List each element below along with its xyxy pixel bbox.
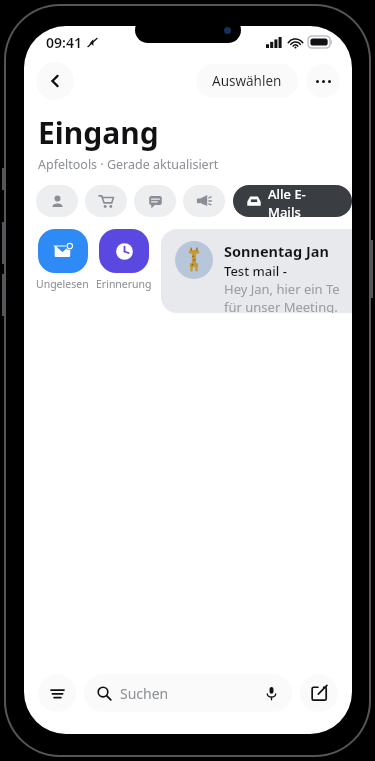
button[interactable]: Auswählen [196,64,298,98]
staticText: Hey Jan, hier ein Te [224,280,340,298]
button[interactable]: Erinnerung [96,229,152,291]
button[interactable]: Suchen [84,674,292,712]
staticText: Auswählen [212,72,282,90]
button[interactable]: Neue E-Mail schreiben [300,674,338,712]
button[interactable]: Sonnentag Jan [161,229,352,313]
button[interactable]: Ungelesen [36,229,89,291]
button[interactable]: Diktieren [264,686,279,701]
staticText: für unser Meeting. W [224,298,352,313]
staticText: Test mail - [224,262,287,280]
staticText: Suchen [120,684,169,703]
button[interactable]: Zurück [36,62,74,100]
staticText: Apfeltools · Gerade aktualisiert [38,156,219,173]
button[interactable]: Nachrichten [134,185,176,217]
staticText: Ungelesen [36,277,89,291]
staticText: Eingang [38,112,159,153]
staticText: Erinnerung [96,277,152,291]
staticText: Sonnentag Jan [224,241,329,261]
button[interactable]: Kontakte [36,185,78,217]
staticText: 09:41 [46,33,82,52]
button[interactable]: Alle E-Mails [233,185,352,217]
button[interactable]: Filter [38,674,76,712]
button[interactable]: Werbung [183,185,225,217]
button[interactable]: Weitere Optionen [306,64,340,98]
button[interactable]: Einkauf [85,185,127,217]
staticText: Alle E-Mails [268,185,337,217]
